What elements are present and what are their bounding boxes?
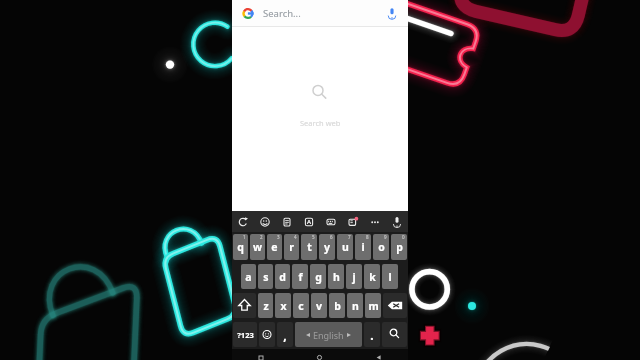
staticText: h: [333, 270, 340, 284]
staticText: g: [315, 270, 322, 284]
staticText: 0: [402, 234, 405, 240]
button[interactable]: w: [250, 234, 265, 260]
button[interactable]: c: [293, 293, 309, 318]
staticText: 3: [277, 234, 280, 240]
staticText: x: [280, 299, 287, 313]
button[interactable]: a: [241, 264, 256, 289]
button[interactable]: Shift: [233, 293, 256, 318]
button[interactable]: j: [346, 264, 362, 289]
staticText: 2: [260, 234, 263, 240]
staticText: English: [313, 329, 344, 341]
button[interactable]: d: [275, 264, 290, 289]
staticText: b: [334, 299, 341, 313]
button[interactable]: t: [301, 234, 317, 260]
staticText: 1: [243, 234, 246, 240]
staticText: w: [253, 240, 262, 254]
staticText: n: [352, 299, 359, 313]
button[interactable]: l: [382, 264, 398, 289]
staticText: Search...: [263, 7, 301, 20]
button[interactable]: emoji: [254, 211, 276, 232]
button[interactable]: refresh: [232, 211, 254, 232]
staticText: t: [307, 240, 312, 254]
button[interactable]: p: [391, 234, 407, 260]
staticText: j: [352, 270, 356, 284]
staticText: ?123: [237, 330, 254, 340]
staticText: d: [279, 270, 286, 284]
button[interactable]: clipboard: [276, 211, 298, 232]
staticText: c: [298, 299, 304, 313]
button[interactable]: o: [373, 234, 389, 260]
button[interactable]: q: [233, 234, 248, 260]
staticText: q: [237, 240, 244, 254]
button[interactable]: s: [258, 264, 273, 289]
button[interactable]: x: [275, 293, 291, 318]
staticText: 6: [330, 234, 333, 240]
staticText: o: [378, 240, 385, 254]
button[interactable]: k: [364, 264, 380, 289]
button[interactable]: Recents: [232, 349, 290, 360]
button[interactable]: translate: [298, 211, 320, 232]
button[interactable]: gif: [342, 211, 364, 232]
button[interactable]: Space: [295, 322, 362, 347]
staticText: 8: [366, 234, 369, 240]
staticText: 9: [384, 234, 387, 240]
staticText: l: [388, 270, 392, 284]
staticText: y: [324, 240, 330, 254]
button[interactable]: Search...: [232, 0, 408, 27]
button[interactable]: i: [355, 234, 371, 260]
staticText: 5: [312, 234, 315, 240]
button[interactable]: h: [328, 264, 344, 289]
button[interactable]: Home: [290, 349, 349, 360]
staticText: 7: [348, 234, 351, 240]
button[interactable]: Search: [382, 322, 407, 347]
button[interactable]: sticker: [320, 211, 342, 232]
staticText: m: [368, 299, 379, 313]
staticText: .: [370, 327, 374, 343]
button[interactable]: mic: [386, 211, 408, 232]
staticText: r: [289, 240, 294, 254]
button[interactable]: more: [364, 211, 386, 232]
button[interactable]: g: [310, 264, 326, 289]
button[interactable]: Emoji: [259, 322, 275, 347]
button[interactable]: ,: [277, 322, 293, 347]
button[interactable]: e: [267, 234, 282, 260]
button[interactable]: m: [365, 293, 381, 318]
staticText: ,: [283, 327, 287, 343]
staticText: v: [316, 299, 322, 313]
staticText: 4: [294, 234, 297, 240]
button[interactable]: r: [284, 234, 299, 260]
button[interactable]: z: [258, 293, 273, 318]
staticText: k: [369, 270, 376, 284]
staticText: i: [361, 240, 365, 254]
button[interactable]: ?123: [233, 322, 257, 347]
staticText: Search web: [300, 118, 341, 128]
button[interactable]: .: [364, 322, 380, 347]
staticText: u: [342, 240, 349, 254]
staticText: p: [396, 240, 403, 254]
button[interactable]: Backspace: [383, 293, 407, 318]
staticText: a: [245, 270, 252, 284]
button[interactable]: Back: [349, 349, 408, 360]
button[interactable]: n: [347, 293, 363, 318]
button[interactable]: u: [337, 234, 353, 260]
staticText: z: [263, 299, 269, 313]
staticText: s: [263, 270, 269, 284]
button[interactable]: v: [311, 293, 327, 318]
staticText: f: [298, 270, 303, 284]
staticText: e: [271, 240, 278, 254]
button[interactable]: f: [292, 264, 308, 289]
button[interactable]: y: [319, 234, 335, 260]
button[interactable]: b: [329, 293, 345, 318]
